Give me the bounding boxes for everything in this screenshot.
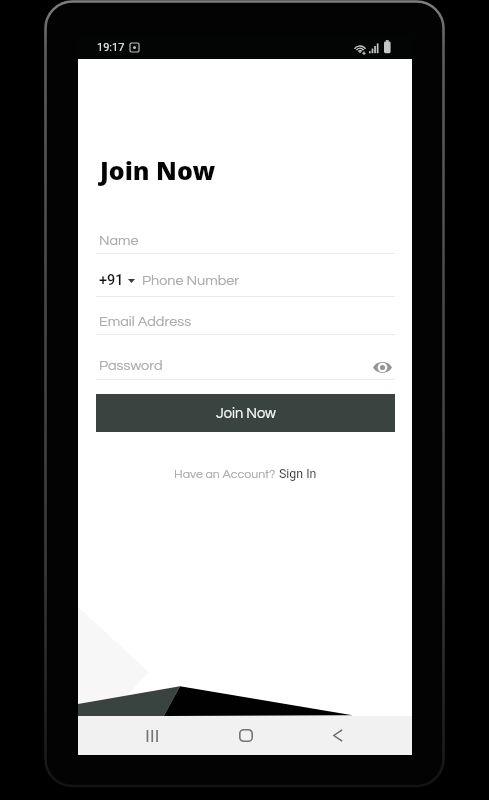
staticText: Have an Account? (174, 468, 279, 481)
staticText: Join Now (100, 153, 216, 187)
staticText: Sign In (279, 466, 317, 481)
staticText: Email Address (99, 314, 192, 329)
button[interactable]: Country code (96, 272, 135, 289)
button[interactable]: Recent apps (132, 716, 172, 755)
staticText: Name (99, 233, 139, 248)
button[interactable]: Back (318, 716, 358, 755)
button[interactable]: Show password (373, 361, 392, 374)
staticText: +91 (99, 272, 124, 289)
staticText: 19:17 (97, 41, 125, 54)
button[interactable]: Name (96, 229, 395, 255)
button[interactable]: Email Address (96, 310, 395, 336)
button[interactable]: Sign In (279, 466, 317, 481)
button[interactable]: Password (96, 354, 395, 382)
staticText: Phone Number (142, 273, 240, 288)
button[interactable]: Home (226, 716, 266, 755)
staticText: Join Now (216, 406, 276, 421)
staticText: Password (99, 358, 163, 373)
button[interactable]: Join Now (96, 394, 395, 432)
